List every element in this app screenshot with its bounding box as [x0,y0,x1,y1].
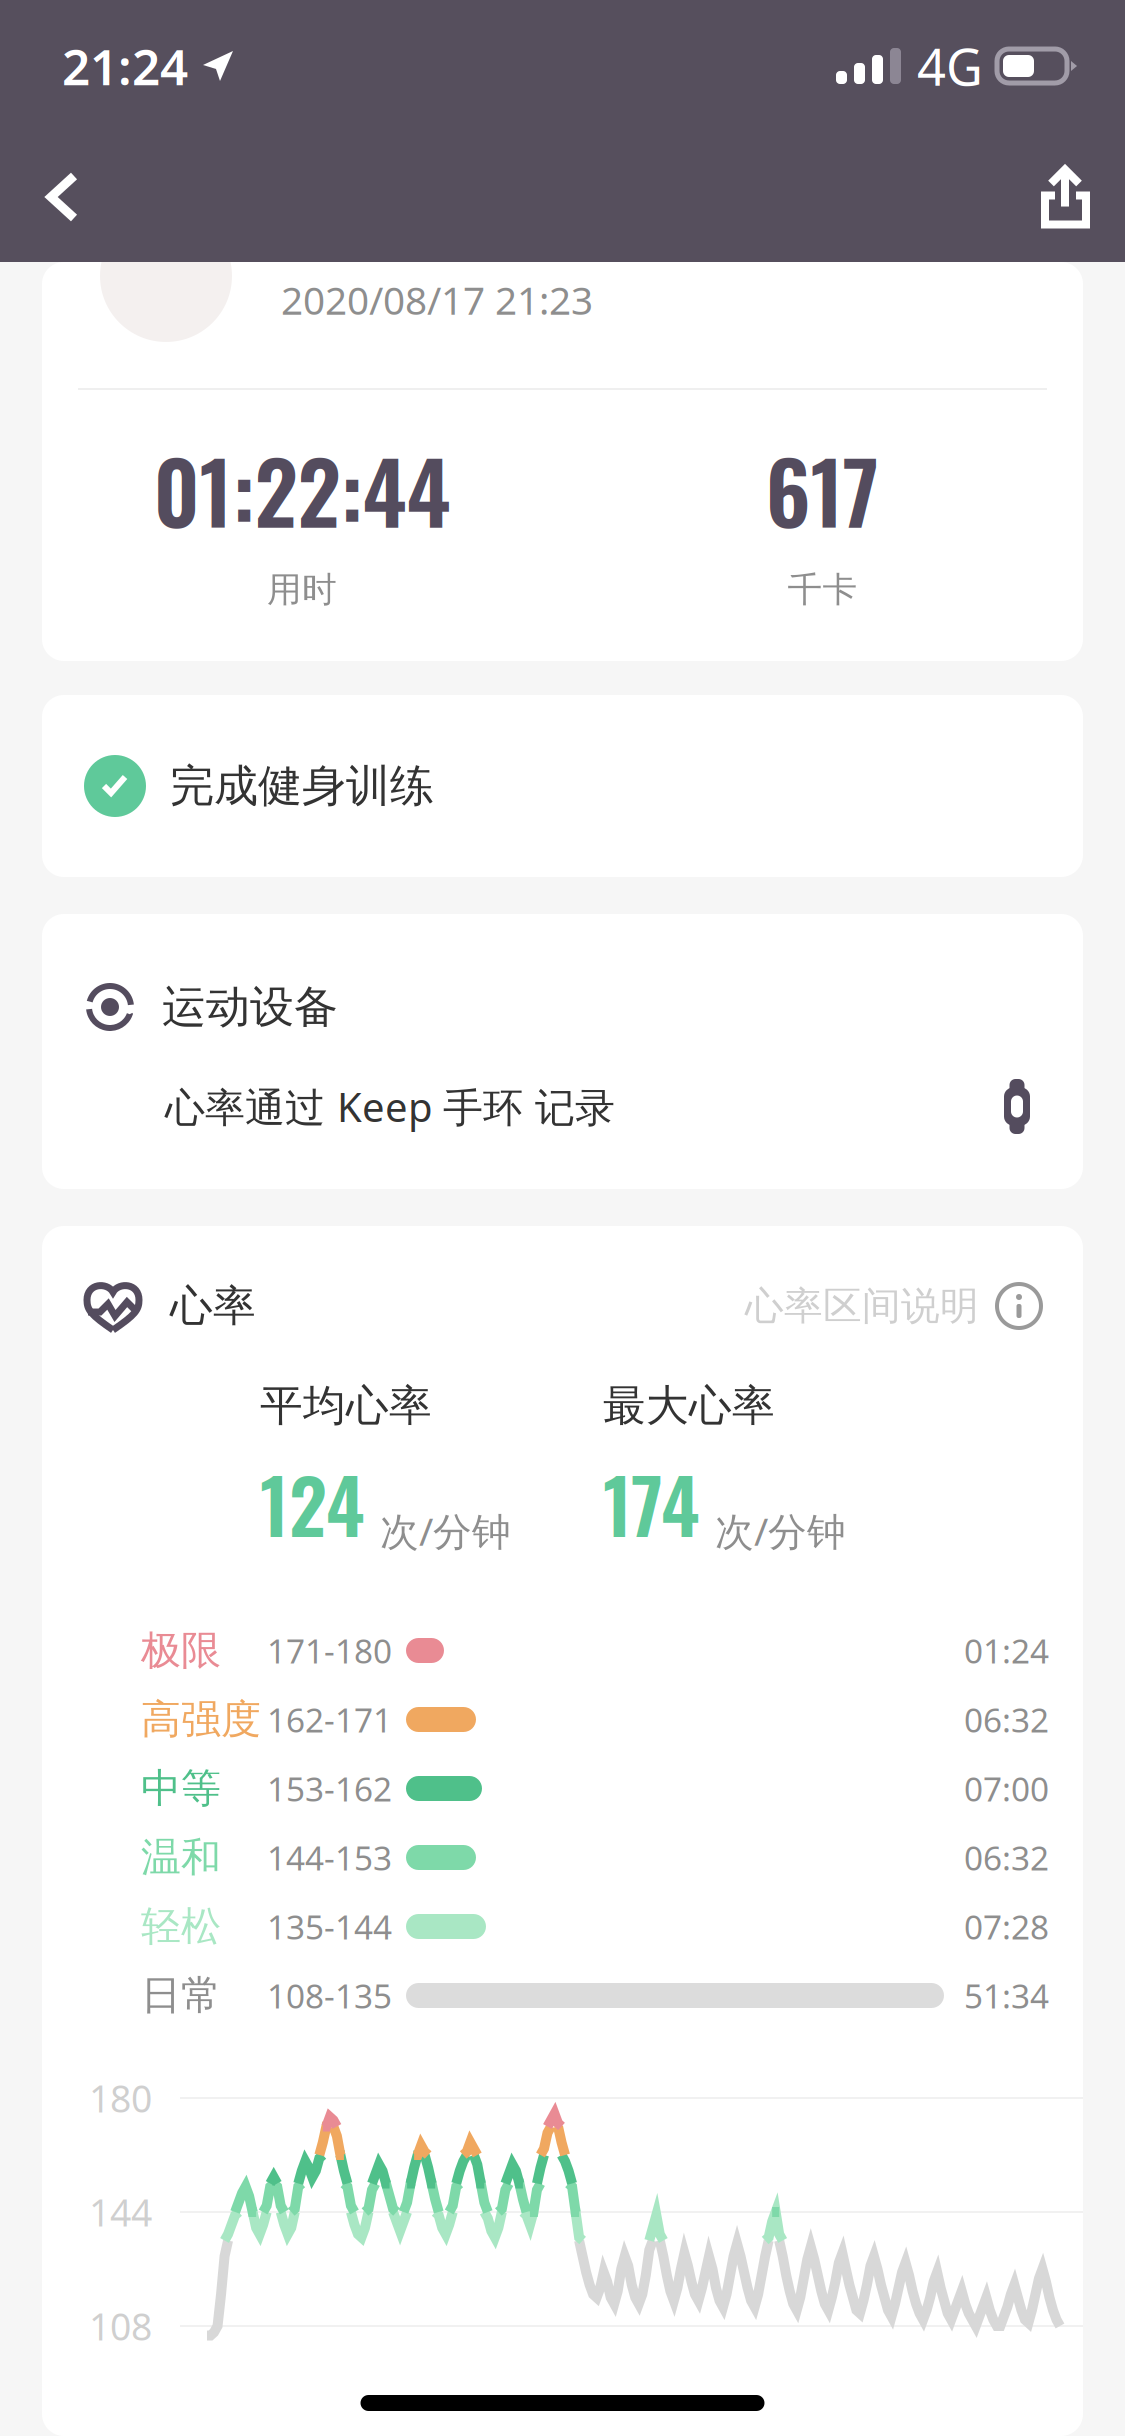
staticText: 用时 [267,568,337,611]
staticText: 完成健身训练 [170,759,434,813]
staticText: 144-153 [267,1835,392,1880]
staticText: 174 [603,1448,699,1559]
staticText: 01:22:44 [153,426,450,552]
staticText: 次/分钟 [715,1505,846,1556]
staticText: 2020/08/17 21:23 [281,274,593,325]
staticText: 温和 [141,1833,221,1882]
staticText: 07:00 [964,1766,1049,1811]
staticText: 高强度 [141,1695,261,1744]
staticText: 极限 [141,1626,221,1675]
staticText: 06:32 [964,1697,1049,1742]
button[interactable]: 心率区间说明 [745,1226,1083,1386]
staticText: 124 [260,1448,364,1559]
staticText: 51:34 [964,1973,1049,2018]
staticText: 153-162 [267,1766,392,1811]
staticText: 162-171 [267,1697,392,1742]
staticText: 心率 [170,1280,256,1332]
staticText: 144 [89,2187,152,2237]
staticText: 次/分钟 [380,1505,511,1556]
staticText: 轻松 [141,1902,221,1951]
button[interactable]: Back [0,132,119,262]
staticText: 06:32 [964,1835,1049,1880]
staticText: 中等 [141,1764,221,1813]
staticText: 21:24 [62,33,188,99]
staticText: 07:28 [964,1904,1049,1949]
staticText: 平均心率 [260,1379,432,1432]
staticText: 心率区间说明 [745,1282,979,1330]
staticText: 运动设备 [162,980,338,1034]
staticText: 最大心率 [603,1379,775,1432]
staticText: 01:24 [964,1628,1049,1673]
staticText: 4G [917,32,983,100]
staticText: 千卡 [787,568,857,611]
staticText: 180 [89,2073,152,2123]
staticText: 135-144 [267,1904,392,1949]
staticText: 171-180 [267,1628,392,1673]
staticText: 108 [89,2301,152,2351]
staticText: 心率通过 Keep 手环 记录 [165,1080,615,1133]
staticText: 617 [765,426,879,552]
staticText: 日常 [141,1971,221,2020]
button[interactable]: Share [1001,132,1125,262]
staticText: 108-135 [267,1973,392,2018]
